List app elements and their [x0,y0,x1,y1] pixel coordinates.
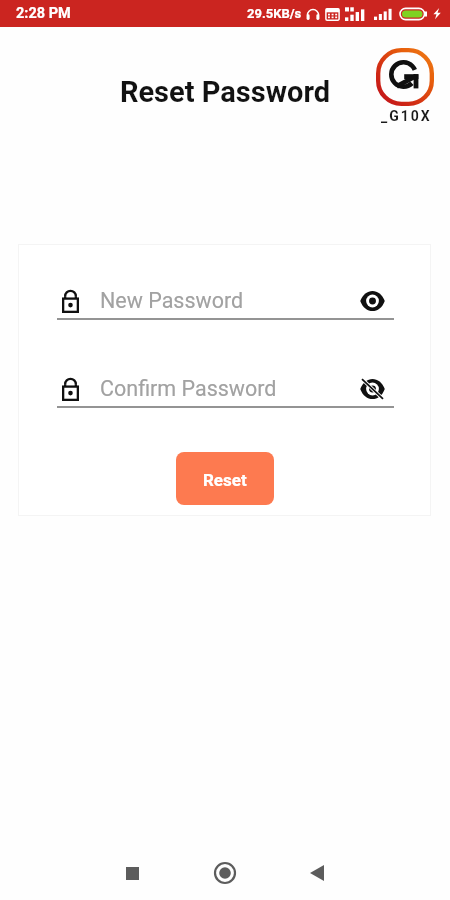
staticText: 29.5KB/s [247,6,302,21]
button[interactable]: Back [270,846,364,900]
button[interactable]: Recents [85,846,179,900]
staticText: Confirm Password [100,376,277,401]
staticText: 2:28 PM [16,5,71,22]
button[interactable]: Home [178,846,272,900]
button[interactable]: Show password [355,372,389,406]
staticText: Reset Password [0,75,450,109]
button[interactable]: Reset [176,452,274,505]
staticText: Reset [203,470,247,490]
staticText: New Password [100,288,244,313]
button[interactable]: Hide password [355,284,389,318]
staticText: _G10X [381,108,432,124]
